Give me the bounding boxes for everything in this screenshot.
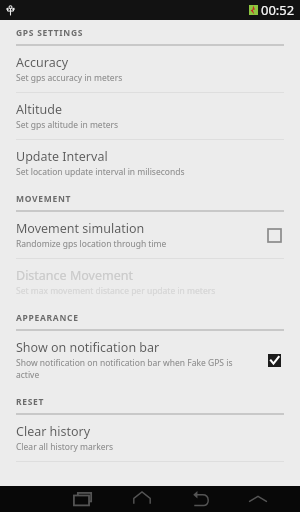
- staticText: Set gps accuracy in meters: [16, 72, 123, 84]
- staticText: Movement simulation: [16, 220, 145, 237]
- button[interactable]: Home: [124, 486, 160, 512]
- button[interactable]: Clear history: [0, 415, 300, 461]
- staticText: 00:52: [261, 1, 295, 19]
- button[interactable]: Movement simulation: [0, 212, 300, 258]
- staticText: Set location update interval in miliseco…: [16, 166, 185, 178]
- staticText: Show on notification bar: [16, 339, 160, 356]
- staticText: GPS SETTINGS: [16, 27, 84, 39]
- button[interactable]: Accuracy: [0, 46, 300, 92]
- staticText: APPEARANCE: [16, 312, 79, 324]
- button[interactable]: Update Interval: [0, 140, 300, 186]
- button[interactable]: Disabled: [264, 225, 284, 245]
- staticText: RESET: [16, 396, 45, 408]
- staticText: MOVEMENT: [16, 193, 72, 205]
- button[interactable]: Altitude: [0, 93, 300, 139]
- button[interactable]: Recent apps: [66, 486, 102, 512]
- staticText: Clear history: [16, 423, 91, 440]
- staticText: Altitude: [16, 101, 62, 118]
- staticText: Distance Movement: [16, 267, 133, 284]
- staticText: Show notification on notification bar wh…: [16, 357, 256, 381]
- button[interactable]: Enabled: [264, 350, 284, 370]
- staticText: Randomize gps location through time: [16, 238, 167, 250]
- staticText: Set gps altitude in meters: [16, 119, 119, 131]
- staticText: Accuracy: [16, 54, 69, 71]
- button[interactable]: Hide keyboard: [240, 486, 276, 512]
- button[interactable]: Show on notification bar: [0, 331, 300, 389]
- staticText: Set max movement distance per update in …: [16, 285, 216, 297]
- staticText: Update Interval: [16, 148, 108, 165]
- button[interactable]: Back: [182, 486, 218, 512]
- staticText: Clear all history markers: [16, 441, 114, 453]
